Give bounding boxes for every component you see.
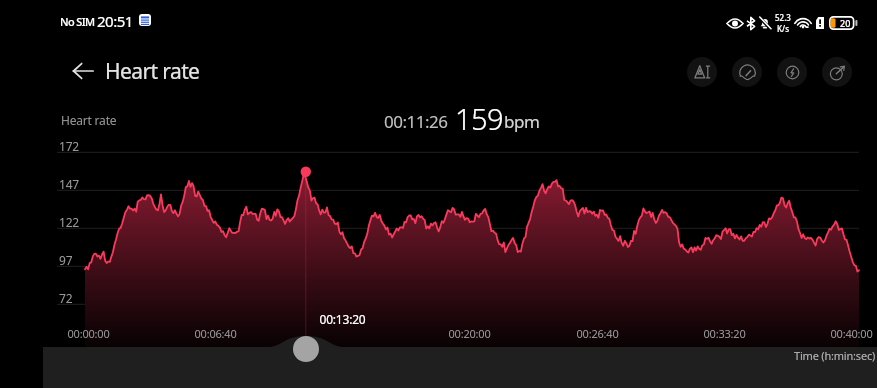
staticText: bpm: [504, 110, 540, 133]
button[interactable]: Back: [64, 52, 102, 90]
staticText: 00:40:00: [830, 326, 873, 341]
staticText: 20: [840, 17, 851, 29]
staticText: 147: [59, 176, 79, 192]
staticText: 97: [59, 252, 73, 268]
button[interactable]: Compass: [822, 57, 852, 87]
staticText: 00:11:26: [384, 110, 448, 133]
staticText: 122: [59, 214, 79, 230]
button[interactable]: Power: [777, 57, 807, 87]
staticText: Time (h:min:sec): [794, 348, 876, 363]
button[interactable]: AI assistant: [687, 57, 717, 87]
staticText: 00:13:20: [319, 311, 366, 327]
button[interactable]: Speed: [732, 57, 762, 87]
staticText: 00:00:00: [67, 326, 110, 341]
staticText: K/s: [777, 23, 790, 34]
staticText: 20:51: [97, 11, 133, 31]
staticText: Heart rate: [61, 112, 117, 128]
button[interactable]: Resize handle: [293, 336, 319, 362]
staticText: 72: [59, 290, 73, 306]
staticText: 159: [455, 99, 503, 138]
staticText: Heart rate: [105, 57, 200, 86]
staticText: 00:20:00: [448, 326, 491, 341]
staticText: 00:26:40: [576, 326, 619, 341]
staticText: 172: [59, 138, 79, 154]
staticText: No SIM: [60, 14, 95, 29]
staticText: 52.3: [775, 12, 791, 23]
staticText: 00:33:20: [703, 326, 746, 341]
staticText: 00:06:40: [194, 326, 237, 341]
